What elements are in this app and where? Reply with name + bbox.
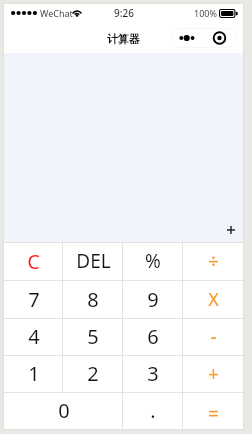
staticText: WeChat	[40, 7, 73, 19]
button[interactable]: -	[183, 318, 243, 355]
staticText: 7	[28, 286, 40, 313]
button[interactable]: 7	[4, 280, 63, 318]
button[interactable]: 6	[123, 318, 183, 355]
button[interactable]: ÷	[183, 242, 243, 280]
staticText: 计算器	[107, 32, 140, 46]
staticText: %	[145, 248, 161, 274]
staticText: 1	[28, 360, 40, 387]
button[interactable]: 3	[123, 355, 183, 392]
staticText: C	[27, 248, 40, 275]
button[interactable]: 9	[123, 280, 183, 318]
button[interactable]: DEL	[63, 242, 123, 280]
button[interactable]: %	[123, 242, 183, 280]
staticText: 3	[147, 360, 159, 387]
staticText: 5	[87, 323, 99, 350]
staticText: ÷	[208, 248, 219, 274]
button[interactable]: 0	[4, 392, 123, 429]
staticText: 9	[147, 286, 159, 313]
button[interactable]: 1	[4, 355, 63, 392]
staticText: 6	[147, 323, 159, 350]
button[interactable]: C	[4, 242, 63, 280]
button[interactable]: Add to history	[223, 222, 239, 238]
staticText: .	[150, 397, 156, 424]
staticText: 9:26	[114, 6, 134, 20]
staticText: 4	[28, 323, 40, 350]
staticText: 100%	[194, 7, 217, 19]
button[interactable]: X	[183, 280, 243, 318]
button[interactable]: More options	[171, 28, 203, 48]
staticText: X	[208, 287, 219, 312]
button[interactable]: .	[123, 392, 183, 429]
staticText: =	[208, 401, 219, 427]
staticText: 2	[87, 360, 99, 387]
staticText: -	[210, 324, 217, 350]
staticText: 0	[58, 397, 70, 424]
button[interactable]: =	[183, 392, 243, 429]
staticText: 8	[87, 286, 99, 313]
button[interactable]: 8	[63, 280, 123, 318]
button[interactable]: 5	[63, 318, 123, 355]
button[interactable]: 2	[63, 355, 123, 392]
staticText: +	[208, 361, 219, 387]
button[interactable]: +	[183, 355, 243, 392]
staticText: DEL	[76, 248, 111, 274]
button[interactable]: Close mini program	[203, 28, 236, 48]
button[interactable]: 4	[4, 318, 63, 355]
